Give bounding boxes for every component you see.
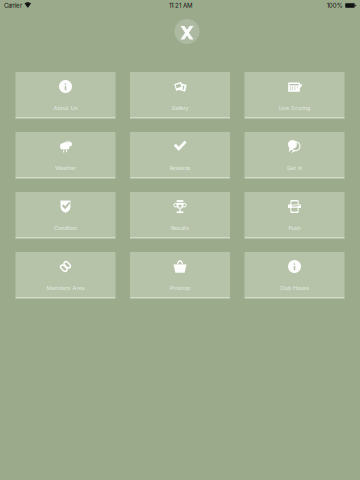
button[interactable]: Get In (244, 132, 344, 178)
button[interactable]: Push (244, 192, 344, 238)
staticText: Push (288, 225, 300, 231)
button[interactable]: About Us (15, 72, 115, 118)
button[interactable]: Club House (244, 252, 344, 298)
button[interactable]: Gallery (130, 72, 230, 118)
staticText: Proshop (170, 285, 190, 291)
button[interactable]: Rewards (130, 132, 230, 178)
button[interactable]: Results (130, 192, 230, 238)
staticText: Rewards (169, 165, 190, 171)
staticText: Live Scoring (279, 105, 310, 111)
button[interactable]: Members Area (15, 252, 115, 298)
staticText: Carrier (4, 2, 22, 9)
staticText: Get In (287, 165, 302, 171)
button[interactable]: Proshop (130, 252, 230, 298)
staticText: Club House (280, 285, 309, 291)
button[interactable]: Close (174, 19, 199, 44)
staticText: Condition (54, 225, 77, 231)
staticText: Weather (55, 165, 76, 171)
staticText: Gallery (171, 105, 188, 111)
staticText: Members Area (46, 285, 84, 291)
staticText: Results (171, 225, 189, 231)
staticText: 100% (327, 2, 343, 9)
button[interactable]: Live Scoring (244, 72, 344, 118)
staticText: 11:21 AM (169, 2, 193, 9)
staticText: About Us (53, 105, 77, 111)
button[interactable]: Weather (15, 132, 115, 178)
button[interactable]: Condition (15, 192, 115, 238)
